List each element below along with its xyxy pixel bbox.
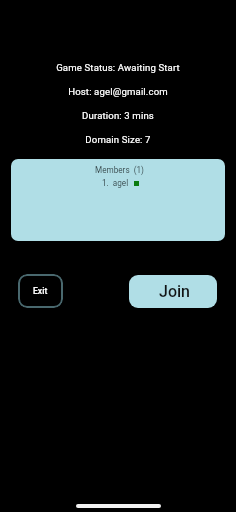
- staticText: Members (1): [95, 165, 144, 175]
- staticText: Exit: [33, 286, 48, 296]
- staticText: Game Status: Awaiting Start: [0, 62, 236, 73]
- staticText: Host: agel@gmail.com: [0, 86, 236, 97]
- staticText: 1. agel: [102, 178, 129, 188]
- staticText: Duration: 3 mins: [0, 110, 236, 121]
- staticText: Domain Size: 7: [0, 134, 236, 145]
- button[interactable]: Exit: [18, 274, 63, 308]
- staticText: Join: [159, 282, 190, 301]
- button[interactable]: Join: [129, 275, 217, 308]
